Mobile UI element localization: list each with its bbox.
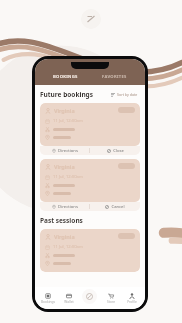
staticText: Wallet bbox=[64, 300, 74, 304]
button[interactable]: Store bbox=[100, 287, 121, 309]
button[interactable]: Directions bbox=[40, 146, 89, 155]
staticText: Close bbox=[113, 148, 124, 154]
button[interactable]: BOOKINGS bbox=[47, 72, 84, 82]
staticText: Past sessions bbox=[40, 216, 83, 225]
staticText: Directions bbox=[58, 204, 78, 210]
button[interactable]: Sort by date bbox=[109, 90, 140, 99]
staticText: BOOKINGS bbox=[53, 74, 78, 80]
button[interactable]: Virginia bbox=[40, 159, 140, 211]
staticText: Virginia bbox=[54, 107, 75, 114]
staticText: Profile bbox=[127, 300, 137, 304]
button[interactable]: Virginia bbox=[40, 229, 140, 272]
button[interactable]: Directions bbox=[40, 202, 89, 211]
staticText: Virginia bbox=[54, 233, 75, 240]
staticText: 11 Jul, 12:00am bbox=[53, 174, 83, 180]
button[interactable] bbox=[118, 107, 135, 113]
button[interactable] bbox=[118, 163, 135, 169]
staticText: 11 Jul, 12:00am bbox=[53, 244, 83, 250]
button[interactable]: Wallet bbox=[58, 287, 79, 309]
staticText: Store bbox=[107, 300, 115, 304]
button[interactable]: Virginia bbox=[40, 103, 140, 155]
button[interactable]: Explore bbox=[82, 289, 97, 304]
button[interactable]: Profile bbox=[121, 287, 142, 309]
button[interactable]: FAVORITES bbox=[96, 72, 133, 82]
staticText: Sort by date bbox=[117, 92, 138, 97]
staticText: Bookings bbox=[41, 300, 55, 304]
staticText: Future bookings bbox=[40, 90, 93, 99]
button[interactable] bbox=[118, 233, 135, 239]
staticText: FAVORITES bbox=[102, 74, 127, 80]
button[interactable]: Cancel bbox=[90, 202, 140, 211]
button[interactable]: Close bbox=[90, 146, 140, 155]
staticText: Virginia bbox=[54, 163, 75, 170]
button[interactable]: Bookings bbox=[38, 287, 58, 309]
staticText: 11 Jul, 12:00am bbox=[53, 118, 83, 124]
staticText: Directions bbox=[58, 148, 78, 154]
staticText: Cancel bbox=[111, 204, 125, 210]
